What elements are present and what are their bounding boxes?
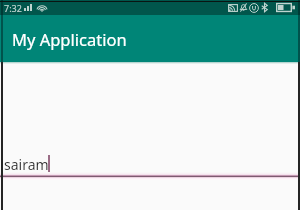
other: Wi-Fi [37,4,47,12]
other: Bluetooth [261,3,268,12]
staticText: 7:32 [4,2,22,14]
button[interactable]: sairam [0,153,300,183]
other: Do not disturb [249,3,259,13]
staticText: sairam [4,155,49,174]
staticText: My Application [12,28,127,50]
other: Battery [276,3,296,12]
other: Mobile signal [24,4,32,11]
other: Notifications silenced [239,3,248,12]
other: Cast [228,4,238,12]
button[interactable]: My Application [0,15,300,62]
